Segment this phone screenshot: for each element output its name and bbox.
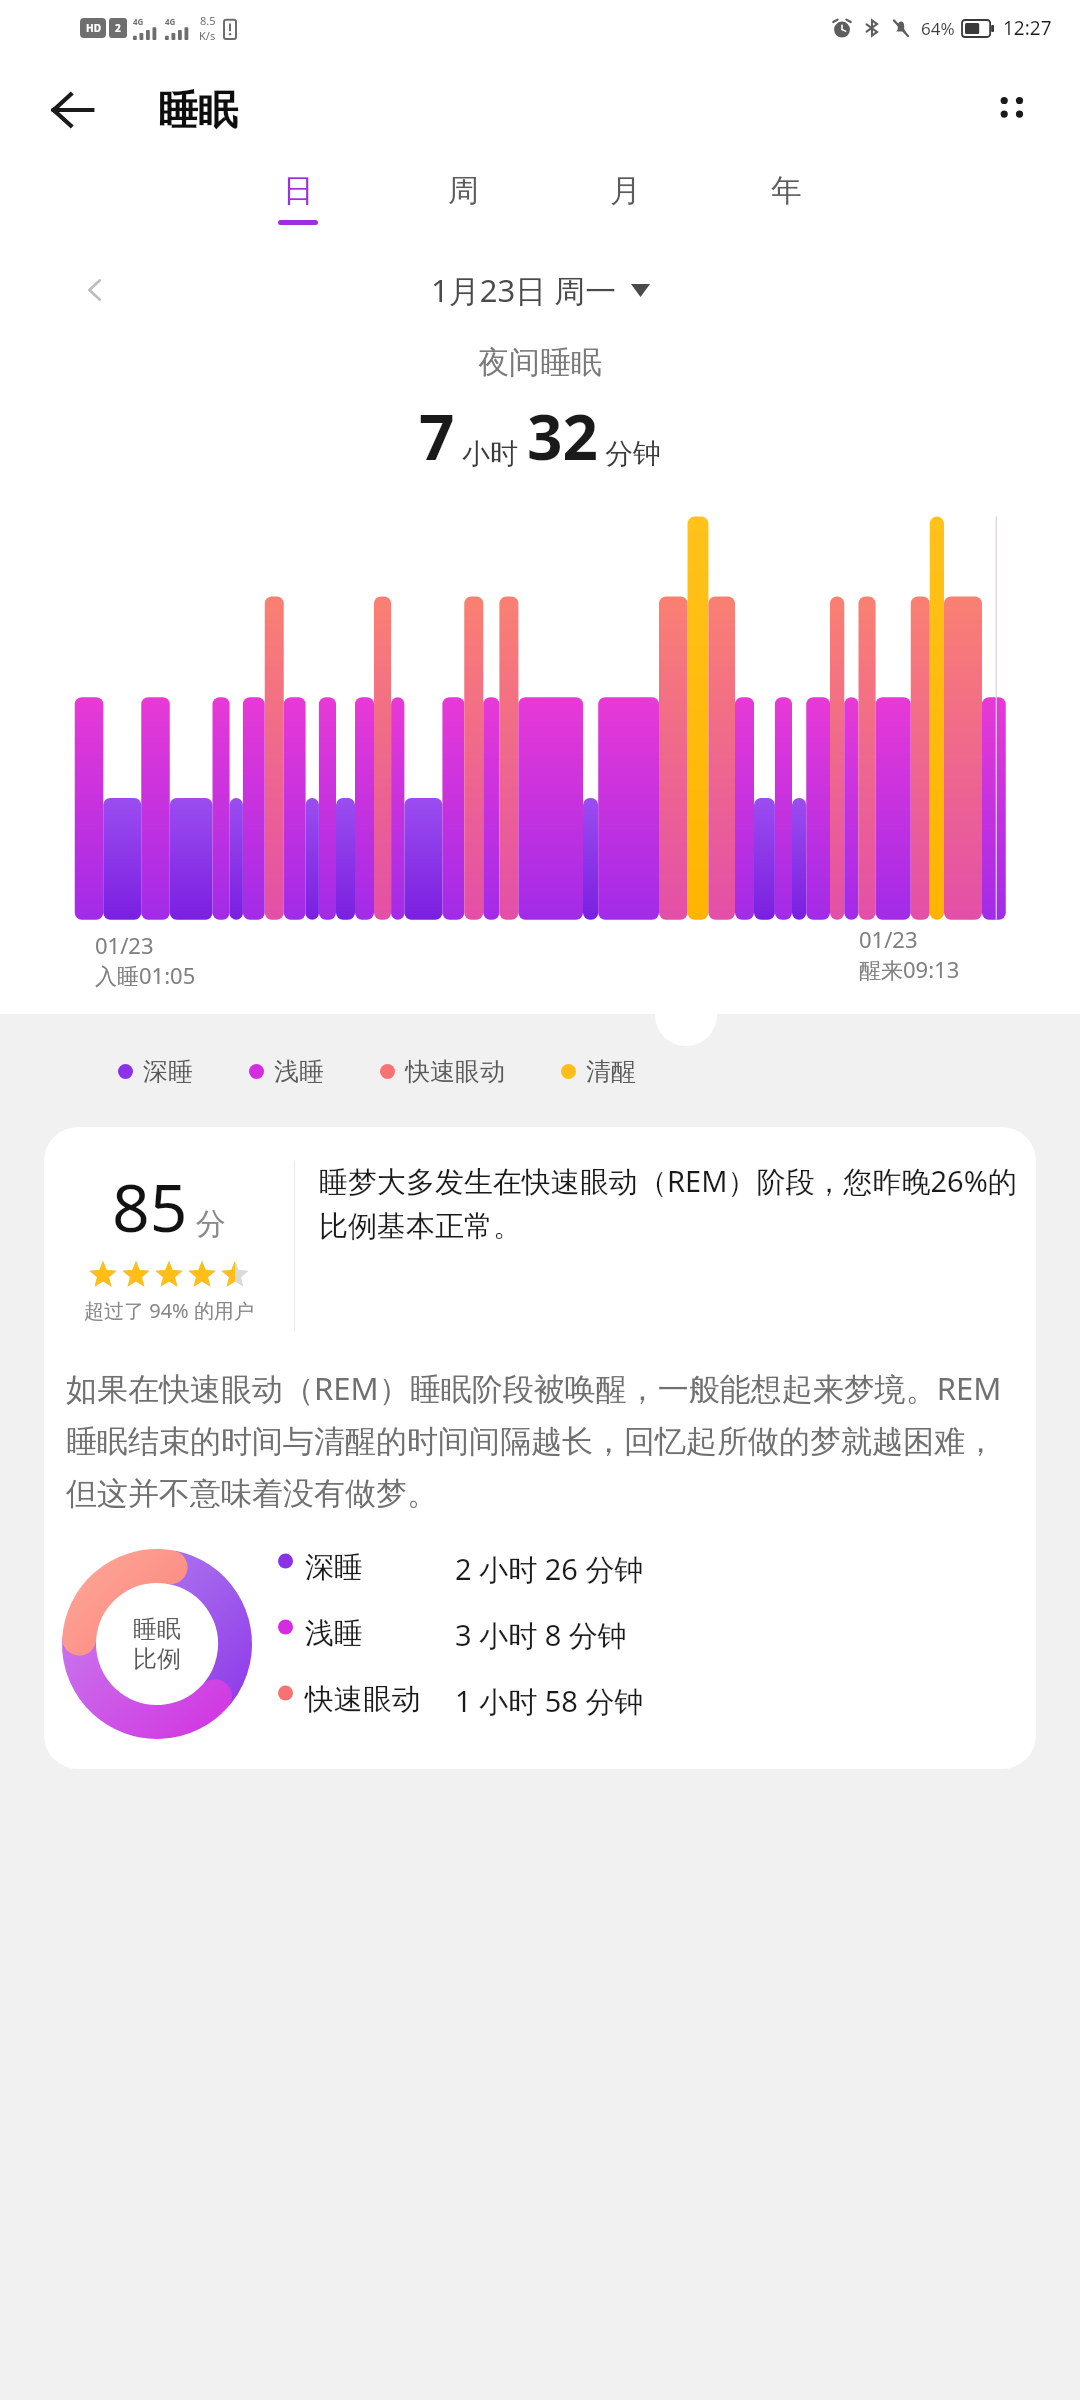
staticText: 64%: [921, 17, 955, 40]
staticText: 睡眠: [158, 85, 238, 135]
staticText: 4G: [165, 16, 176, 27]
staticText: 醒来09:13: [859, 954, 960, 984]
staticText: 入睡01:05: [95, 960, 196, 990]
button[interactable]: More options: [978, 77, 1044, 143]
staticText: 01/23: [859, 924, 918, 954]
staticText: 2 小时 26 分钟: [455, 1549, 1022, 1589]
button[interactable]: 深睡: [278, 1549, 1022, 1589]
button[interactable]: 浅睡: [278, 1615, 1022, 1655]
button[interactable]: 周: [438, 165, 489, 231]
staticText: 3 小时 8 分钟: [455, 1615, 1022, 1655]
button[interactable]: 日: [268, 165, 328, 231]
staticText: 深睡: [143, 1056, 193, 1087]
other: Bluetooth: [863, 19, 881, 37]
staticText: 2: [115, 21, 121, 35]
staticText: 睡梦大多发生在快速眼动（REM）阶段，您昨晚26%的比例基本正常。: [319, 1161, 1022, 1244]
staticText: 01/23: [95, 930, 154, 960]
staticText: 85: [112, 1161, 188, 1251]
button[interactable]: Back: [42, 79, 104, 141]
staticText: 比例: [133, 1644, 181, 1674]
staticText: 浅睡: [305, 1615, 455, 1652]
staticText: 小时: [462, 436, 518, 471]
staticText: 4G: [133, 16, 144, 27]
staticText: 快速眼动: [405, 1056, 505, 1087]
other: Alarm: [831, 17, 853, 39]
staticText: 超过了 94% 的用户: [84, 1297, 254, 1324]
staticText: 12:27: [1003, 15, 1052, 41]
button[interactable]: Previous day: [70, 265, 120, 315]
staticText: 日: [283, 171, 314, 210]
staticText: 如果在快速眼动（REM）睡眠阶段被唤醒，一般能想起来梦境。REM睡眠结束的时间与…: [66, 1367, 1014, 1513]
button[interactable]: 月: [600, 165, 651, 231]
staticText: 8.5: [200, 13, 216, 28]
button[interactable]: 清醒: [561, 1056, 636, 1087]
staticText: 快速眼动: [305, 1681, 455, 1718]
staticText: 7: [419, 394, 455, 478]
staticText: 月: [610, 171, 641, 210]
staticText: 睡眠: [133, 1614, 181, 1644]
other: Notifications muted: [891, 18, 911, 38]
button[interactable]: 快速眼动: [380, 1056, 505, 1087]
staticText: K/s: [199, 28, 216, 43]
staticText: 分钟: [605, 436, 661, 471]
staticText: 浅睡: [274, 1056, 324, 1087]
button[interactable]: 浅睡: [249, 1056, 324, 1087]
staticText: HD: [86, 21, 101, 35]
staticText: 夜间睡眠: [478, 343, 602, 382]
staticText: 分: [196, 1205, 226, 1243]
button[interactable]: 快速眼动: [278, 1681, 1022, 1721]
button[interactable]: 年: [761, 165, 812, 231]
staticText: 周: [448, 171, 479, 210]
staticText: 年: [771, 171, 802, 210]
staticText: 深睡: [305, 1549, 455, 1586]
button[interactable]: 1月23日 周一: [431, 269, 650, 311]
staticText: 清醒: [586, 1056, 636, 1087]
button[interactable]: 深睡: [118, 1056, 193, 1087]
staticText: 1月23日 周一: [431, 269, 617, 311]
staticText: 32: [527, 394, 598, 478]
staticText: 1 小时 58 分钟: [455, 1681, 1022, 1721]
